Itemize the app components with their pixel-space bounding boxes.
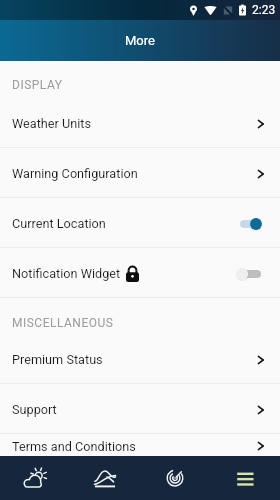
staticText: More	[125, 33, 155, 48]
button[interactable]: Terms and Conditions	[0, 434, 280, 456]
staticText: Support	[12, 402, 57, 417]
staticText: MISCELLANEOUS	[12, 316, 114, 330]
button[interactable]: Warning Configuration	[0, 148, 280, 197]
button[interactable]: Radar	[140, 456, 210, 500]
button[interactable]: Notification Widget	[0, 248, 280, 297]
staticText: DISPLAY	[12, 78, 63, 92]
button[interactable]: Current Location	[0, 198, 280, 247]
staticText: 2:23	[252, 3, 276, 17]
button[interactable]: Premium Status	[0, 334, 280, 383]
staticText: Current Location	[12, 216, 106, 231]
button[interactable]: Weather Units	[0, 98, 280, 147]
button[interactable]: Charts	[70, 456, 140, 500]
button[interactable]: Weather	[0, 456, 70, 500]
staticText: Terms and Conditions	[12, 439, 136, 454]
staticText: Premium Status	[12, 352, 103, 367]
button[interactable]: Menu	[210, 456, 280, 500]
staticText: Warning Configuration	[12, 166, 138, 181]
staticText: Weather Units	[12, 116, 92, 131]
button[interactable]: Support	[0, 384, 280, 433]
staticText: Notification Widget	[12, 266, 121, 281]
